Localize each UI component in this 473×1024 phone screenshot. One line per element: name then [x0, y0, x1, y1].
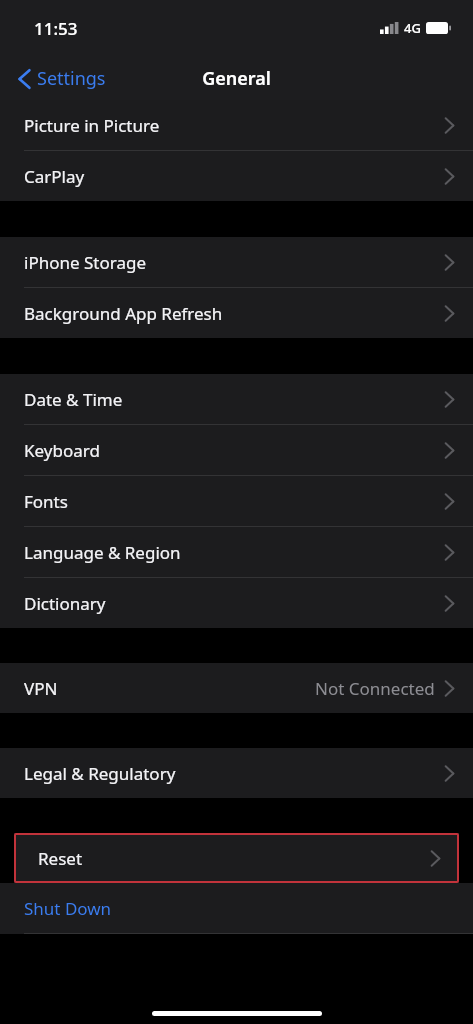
button[interactable]: Dictionary: [0, 578, 473, 628]
staticText: Shut Down: [24, 897, 112, 920]
button[interactable]: Fonts: [0, 476, 473, 527]
staticText: Keyboard: [24, 439, 100, 462]
button[interactable]: VPN: [0, 663, 473, 713]
button[interactable]: Shut Down: [0, 883, 473, 934]
other: Home indicator: [152, 1011, 322, 1016]
staticText: VPN: [24, 677, 58, 700]
button[interactable]: Keyboard: [0, 425, 473, 476]
button[interactable]: Reset: [14, 833, 459, 883]
staticText: iPhone Storage: [24, 251, 146, 274]
staticText: Date & Time: [24, 388, 123, 411]
button[interactable]: Legal & Regulatory: [0, 748, 473, 798]
button[interactable]: iPhone Storage: [0, 237, 473, 288]
staticText: Reset: [38, 847, 83, 870]
staticText: General: [202, 66, 271, 91]
button[interactable]: CarPlay: [0, 151, 473, 201]
staticText: Picture in Picture: [24, 114, 160, 137]
staticText: Dictionary: [24, 592, 106, 615]
staticText: Settings: [37, 66, 106, 91]
button[interactable]: Picture in Picture: [0, 100, 473, 151]
button[interactable]: Background App Refresh: [0, 288, 473, 338]
staticText: CarPlay: [24, 165, 85, 188]
button[interactable]: Language & Region: [0, 527, 473, 578]
staticText: Not Connected: [315, 677, 435, 700]
staticText: Language & Region: [24, 541, 181, 564]
staticText: Legal & Regulatory: [24, 762, 176, 785]
staticText: 4G: [404, 19, 421, 37]
staticText: 11:53: [34, 17, 78, 40]
staticText: Fonts: [24, 490, 68, 513]
staticText: Background App Refresh: [24, 302, 223, 325]
button[interactable]: Date & Time: [0, 374, 473, 425]
button[interactable]: Settings: [12, 62, 112, 95]
